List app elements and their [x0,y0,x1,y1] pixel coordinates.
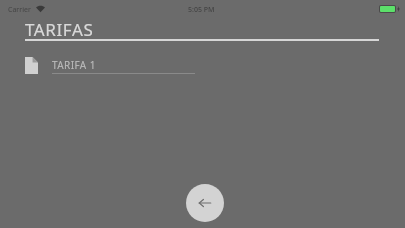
staticText: TARIFAS [25,18,94,41]
button[interactable]: Document [25,52,195,78]
other: Document [25,57,38,74]
staticText: Carrier [8,5,31,15]
staticText: TARIFA 1 [52,58,96,72]
staticText: 5:05 PM [188,5,215,15]
button[interactable]: Back [186,184,224,222]
